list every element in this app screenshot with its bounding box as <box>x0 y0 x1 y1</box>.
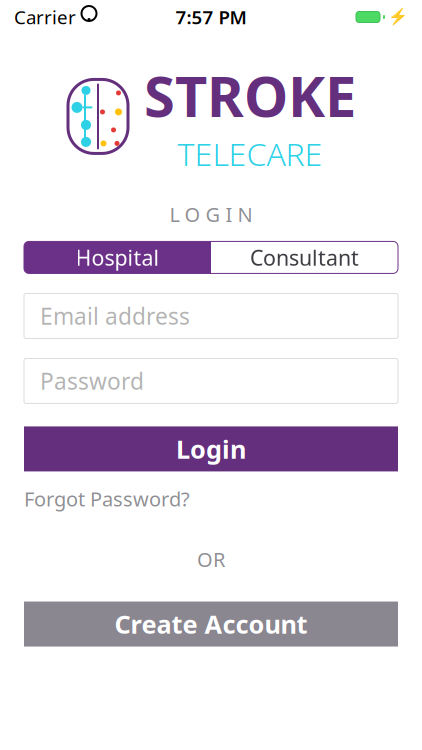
staticText: L O G I N <box>169 201 252 227</box>
button[interactable]: Create Account <box>24 601 398 646</box>
button[interactable]: Forgot Password? <box>24 481 190 516</box>
button[interactable]: Hospital <box>24 241 211 273</box>
staticText: STROKE <box>144 58 356 132</box>
button[interactable]: Consultant <box>211 241 398 273</box>
staticText: TELECARE <box>177 132 322 175</box>
staticText: Hospital <box>75 243 159 272</box>
staticText: Password <box>40 366 144 396</box>
staticText: Create Account <box>114 607 307 641</box>
staticText: OR <box>197 546 225 573</box>
staticText: Consultant <box>250 243 359 272</box>
staticText: Login <box>176 432 246 466</box>
staticText: Carrier <box>14 5 76 29</box>
staticText: Forgot Password? <box>24 485 190 512</box>
staticText: Email address <box>40 301 190 331</box>
staticText: ⚡ <box>388 8 408 26</box>
button[interactable]: Login <box>24 426 398 471</box>
staticText: 7:57 PM <box>175 5 246 29</box>
